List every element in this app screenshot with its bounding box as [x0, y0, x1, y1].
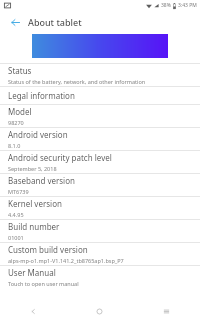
staticText: Kernel version	[8, 198, 62, 209]
button[interactable]: Model	[0, 105, 200, 127]
staticText: User Manual	[8, 267, 56, 278]
staticText: 98270	[8, 119, 24, 126]
button[interactable]: Build number	[0, 220, 200, 242]
staticText: September 5, 2018	[8, 165, 57, 172]
button[interactable]: Android version	[0, 128, 200, 150]
staticText: Touch to open user manual	[8, 280, 79, 287]
button[interactable]: Back	[0, 303, 66, 320]
button[interactable]: Kernel version	[0, 197, 200, 219]
staticText: Model	[8, 106, 32, 117]
staticText: About tablet	[28, 16, 82, 28]
staticText: alps-mp-o1.mp1-V1.141.2_tb8765ap1.bsp_P7	[8, 257, 124, 264]
staticText: Custom build version	[8, 244, 88, 255]
staticText: Status	[8, 65, 32, 76]
staticText: Android version	[8, 129, 68, 140]
button[interactable]: Custom build version	[0, 243, 200, 265]
staticText: 8.1.0	[8, 142, 21, 149]
staticText: Status of the battery, network, and othe…	[8, 78, 146, 85]
button[interactable]: Legal information	[0, 87, 200, 104]
button[interactable]: Back	[6, 13, 24, 31]
staticText: MT6739	[8, 188, 29, 195]
button[interactable]: User Manual	[0, 266, 200, 288]
button[interactable]: Home	[66, 303, 133, 320]
button[interactable]: Status	[0, 64, 200, 86]
staticText: Android security patch level	[8, 152, 112, 163]
staticText: 38%	[161, 2, 171, 9]
staticText: 3:43 PM	[178, 2, 197, 9]
button[interactable]: Android security patch level	[0, 151, 200, 173]
staticText: Build number	[8, 221, 60, 232]
button[interactable]: Recents	[133, 303, 200, 320]
button[interactable]: Baseband version	[0, 174, 200, 196]
staticText: 01001	[8, 234, 24, 241]
staticText: Baseband version	[8, 175, 75, 186]
staticText: 4.4.95	[8, 211, 24, 218]
staticText: Legal information	[8, 90, 75, 101]
